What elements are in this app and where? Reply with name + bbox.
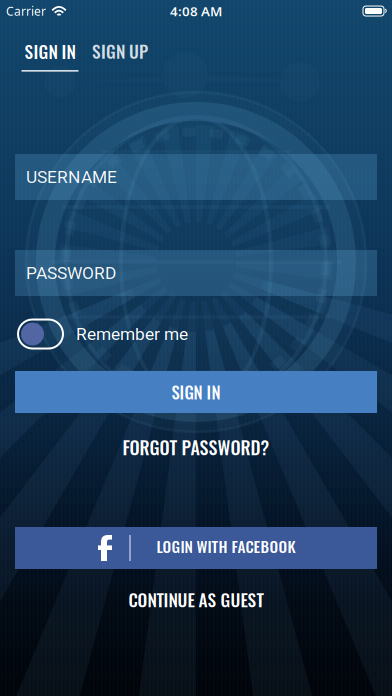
button[interactable]: SIGN IN [21,38,78,72]
staticText: USERNAME [26,167,117,187]
staticText: SIGN IN [171,380,220,404]
button[interactable]: CONTINUE AS GUEST [128,587,263,612]
staticText: SIGN IN [24,38,75,64]
staticText: 4:08 AM [170,2,222,20]
staticText: Remember me [76,324,188,344]
staticText: CONTINUE AS GUEST [128,587,263,612]
button[interactable]: USERNAME [15,154,377,200]
button[interactable]: Remember me [0,318,392,350]
staticText: PASSWORD [26,263,116,283]
staticText: Carrier [6,3,46,19]
button[interactable]: LOGIN WITH FACEBOOK [15,527,377,569]
button[interactable]: PASSWORD [15,250,377,296]
button[interactable]: SIGN IN [15,371,377,413]
staticText: LOGIN WITH FACEBOOK [156,535,295,557]
button[interactable]: SIGN UP [92,38,148,64]
staticText: FORGOT PASSWORD? [122,434,269,460]
button[interactable]: FORGOT PASSWORD? [122,434,269,460]
staticText: SIGN UP [92,38,148,64]
